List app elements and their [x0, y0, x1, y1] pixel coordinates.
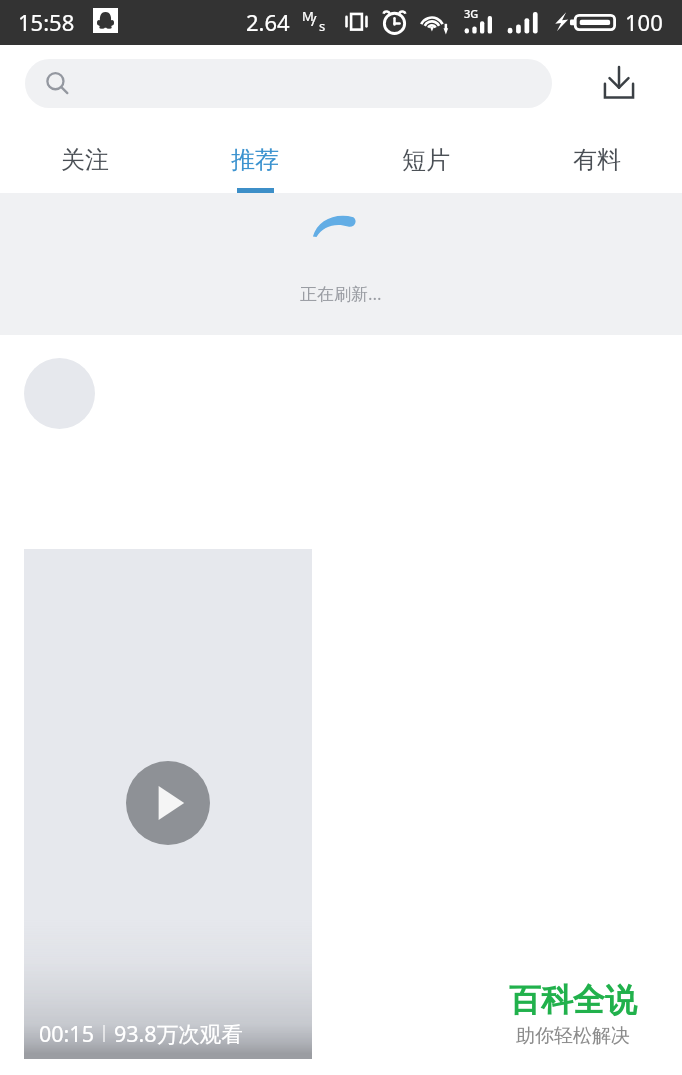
- staticText: 助你轻松解决: [516, 1024, 630, 1048]
- staticText: 100: [625, 7, 663, 37]
- button[interactable]: 有料: [511, 120, 682, 193]
- staticText: 关注: [61, 145, 109, 175]
- button[interactable]: [25, 59, 552, 108]
- staticText: 00:15: [39, 1019, 94, 1048]
- staticText: 正在刷新...: [300, 282, 382, 305]
- staticText: 2.64: [246, 7, 290, 37]
- button[interactable]: 短片: [340, 120, 511, 193]
- staticText: 3G: [464, 6, 479, 21]
- staticText: 百科全说: [509, 980, 637, 1020]
- button[interactable]: 推荐: [170, 120, 340, 193]
- button[interactable]: 关注: [0, 120, 170, 193]
- staticText: 短片: [402, 145, 450, 175]
- staticText: 有料: [573, 145, 621, 175]
- staticText: /: [311, 10, 317, 30]
- staticText: 93.8万次观看: [114, 1019, 243, 1048]
- button[interactable]: Download: [592, 56, 646, 110]
- staticText: s: [319, 17, 326, 35]
- staticText: 15:58: [18, 7, 75, 37]
- button[interactable]: Play: [126, 761, 210, 845]
- staticText: 推荐: [231, 145, 279, 175]
- staticText: M: [302, 7, 314, 25]
- button[interactable]: Play: [24, 549, 312, 1059]
